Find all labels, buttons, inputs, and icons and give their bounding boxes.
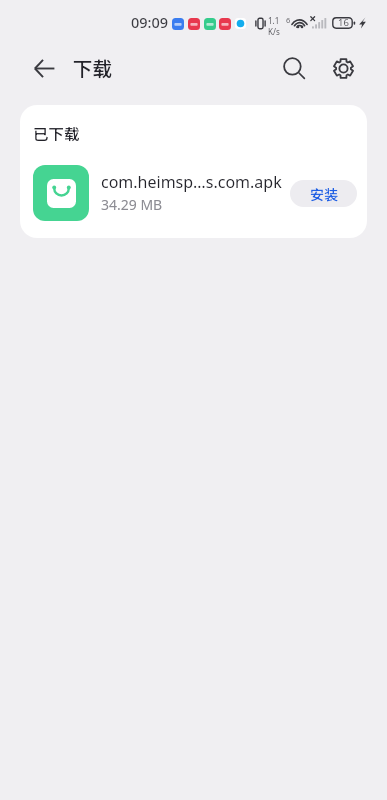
staticText: 6 bbox=[286, 15, 291, 25]
button[interactable]: Back bbox=[22, 46, 67, 91]
button[interactable]: Settings bbox=[321, 46, 366, 91]
staticText: 安装 bbox=[310, 184, 338, 204]
staticText: 下载 bbox=[73, 53, 113, 81]
button[interactable]: Search bbox=[272, 46, 317, 91]
staticText: 1.1 bbox=[268, 15, 280, 26]
staticText: 09:09 bbox=[131, 12, 169, 32]
staticText: 已下载 bbox=[33, 122, 80, 144]
staticText: 16 bbox=[338, 16, 349, 29]
staticText: com.heimsp…s.com.apk bbox=[101, 171, 282, 193]
staticText: K/s bbox=[268, 26, 280, 37]
button[interactable]: com.heimsp…s.com.apk bbox=[20, 154, 367, 230]
staticText: 34.29 MB bbox=[101, 195, 163, 214]
button[interactable]: 安装 bbox=[290, 180, 357, 207]
